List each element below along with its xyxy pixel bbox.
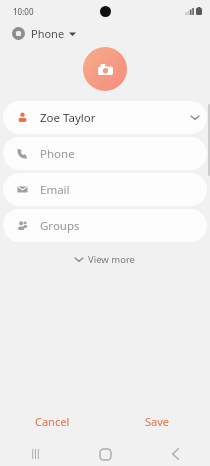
staticText: View more (88, 253, 135, 266)
staticText: Phone (31, 26, 65, 41)
staticText: Groups (40, 218, 80, 234)
button[interactable]: Home (70, 442, 140, 466)
button[interactable]: Add contact photo (83, 47, 127, 91)
button[interactable]: Back (140, 442, 210, 466)
button[interactable]: Email (3, 173, 207, 206)
button[interactable]: Cancel (19, 409, 86, 434)
staticText: Email (40, 182, 70, 198)
staticText: Cancel (35, 414, 70, 429)
button[interactable]: Phone (10, 22, 78, 45)
staticText: Zoe Taylor (40, 110, 96, 126)
staticText: Phone (40, 146, 75, 162)
button[interactable]: Phone (3, 137, 207, 170)
staticText: Save (145, 414, 170, 429)
button[interactable]: Zoe Taylor (3, 101, 207, 134)
button[interactable]: Recent apps (0, 442, 70, 466)
staticText: 10:00 (13, 6, 34, 17)
button[interactable]: Save (129, 409, 186, 434)
button[interactable]: Groups (3, 209, 207, 242)
button[interactable]: View more (69, 250, 141, 269)
